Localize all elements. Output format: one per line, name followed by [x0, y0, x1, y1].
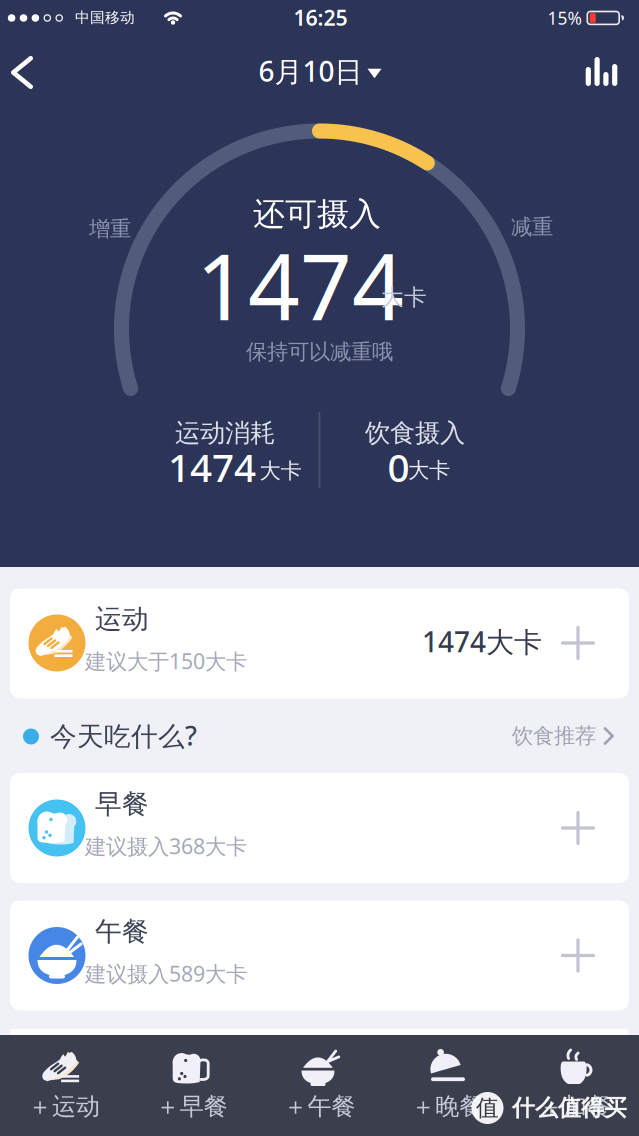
staticText: 什么值得买: [512, 1094, 627, 1122]
button[interactable]: 6月10日: [258, 52, 381, 90]
staticText: 还可摄入: [253, 194, 381, 234]
staticText: 大卡: [408, 457, 450, 484]
staticText: 运动消耗: [175, 417, 275, 448]
staticText: 值: [476, 1094, 499, 1122]
staticText: 6月10日: [258, 52, 362, 90]
staticText: 16:25: [293, 3, 347, 32]
staticText: 饮食推荐: [512, 723, 596, 749]
button[interactable]: 统计图表: [579, 57, 623, 86]
button[interactable]: 早餐: [10, 773, 629, 883]
staticText: 0: [387, 441, 409, 493]
staticText: 今天吃什么?: [50, 718, 197, 753]
staticText: 午餐: [95, 915, 149, 948]
staticText: 15%: [547, 6, 581, 29]
staticText: 1474大卡: [422, 623, 542, 660]
staticText: 建议摄入368大卡: [85, 832, 247, 860]
button[interactable]: 午餐: [10, 900, 629, 1010]
button[interactable]: ＋加餐: [511, 1035, 639, 1136]
button[interactable]: ＋早餐: [128, 1035, 256, 1136]
staticText: ＋早餐: [156, 1092, 228, 1121]
staticText: 1474: [196, 225, 404, 345]
staticText: 饮食摄入: [365, 417, 465, 448]
button[interactable]: ＋午餐: [256, 1035, 383, 1136]
staticText: ＋加餐: [539, 1092, 611, 1121]
staticText: 减重: [511, 214, 553, 240]
staticText: ＋晚餐: [411, 1092, 483, 1121]
staticText: 大卡: [381, 284, 427, 311]
button[interactable]: 运动: [10, 588, 629, 698]
staticText: 建议大于150大卡: [85, 647, 247, 675]
staticText: ＋运动: [28, 1092, 100, 1121]
staticText: 运动: [95, 603, 149, 635]
staticText: 保持可以减重哦: [246, 339, 393, 365]
staticText: 1474: [168, 441, 256, 493]
staticText: 大卡: [259, 458, 301, 484]
staticText: ＋午餐: [283, 1092, 355, 1121]
button[interactable]: ＋运动: [0, 1035, 128, 1136]
staticText: 中国移动: [75, 8, 135, 26]
button[interactable]: 饮食推荐: [414, 716, 614, 756]
button[interactable]: 返回: [4, 45, 48, 100]
staticText: 增重: [89, 216, 131, 242]
staticText: 早餐: [95, 788, 149, 820]
staticText: 建议摄入589大卡: [85, 959, 247, 988]
button[interactable]: ＋晚餐: [383, 1035, 511, 1136]
